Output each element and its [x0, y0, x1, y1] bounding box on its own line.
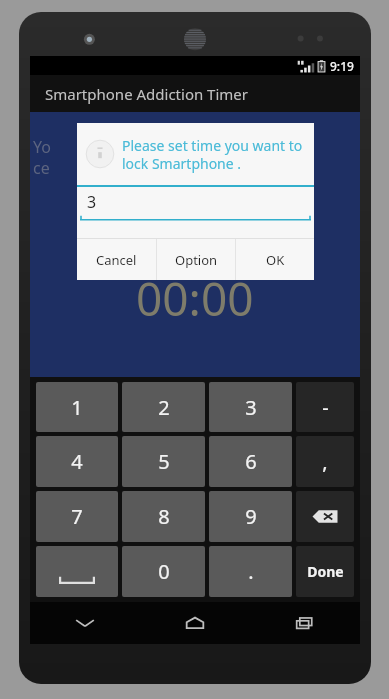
button[interactable]: Space	[36, 546, 118, 597]
staticText: 6	[245, 448, 257, 475]
staticText: 8	[158, 503, 170, 530]
staticText: 4	[71, 448, 83, 475]
button[interactable]: .	[209, 546, 292, 597]
staticText: 7	[71, 503, 83, 530]
staticText: 9:19	[330, 58, 354, 74]
button[interactable]: Recent apps	[250, 602, 360, 644]
staticText: 0	[158, 558, 170, 585]
staticText: OK	[266, 251, 285, 269]
staticText: 9	[245, 503, 257, 530]
staticText: Done	[307, 562, 344, 581]
staticText: Smartphone Addiction Timer	[45, 84, 249, 104]
button[interactable]: Cancel	[77, 239, 156, 280]
staticText: .	[248, 558, 254, 585]
staticText: Please set time you want to lock Smartph…	[122, 136, 304, 173]
button[interactable]: 8	[122, 491, 205, 542]
button[interactable]: 3	[80, 187, 311, 221]
button[interactable]: Option	[157, 239, 235, 280]
button[interactable]: 5	[122, 436, 205, 487]
staticText: 3	[245, 394, 257, 421]
staticText: -	[322, 394, 329, 421]
button[interactable]: 1	[36, 382, 118, 432]
button[interactable]: Home	[140, 602, 250, 644]
staticText: Cancel	[96, 251, 137, 269]
button[interactable]: OK	[236, 239, 314, 280]
staticText: 5	[158, 448, 170, 475]
staticText: Yo ce	[33, 136, 51, 179]
staticText: Option	[175, 251, 218, 269]
staticText: 3	[87, 191, 97, 213]
button[interactable]: Hide keyboard	[30, 602, 140, 644]
button[interactable]: 7	[36, 491, 118, 542]
staticText: 00:00	[136, 267, 254, 330]
button[interactable]: 0	[122, 546, 205, 597]
button[interactable]: -	[296, 382, 354, 432]
button[interactable]: 9	[209, 491, 292, 542]
button[interactable]: Backspace	[296, 491, 354, 542]
button[interactable]: 3	[209, 382, 292, 432]
staticText: 1	[71, 394, 83, 421]
button[interactable]: Done	[296, 546, 354, 597]
staticText: 2	[158, 394, 170, 421]
button[interactable]: 4	[36, 436, 118, 487]
button[interactable]: 2	[122, 382, 205, 432]
button[interactable]: 6	[209, 436, 292, 487]
button[interactable]: ,	[296, 436, 354, 487]
staticText: ,	[322, 448, 328, 475]
